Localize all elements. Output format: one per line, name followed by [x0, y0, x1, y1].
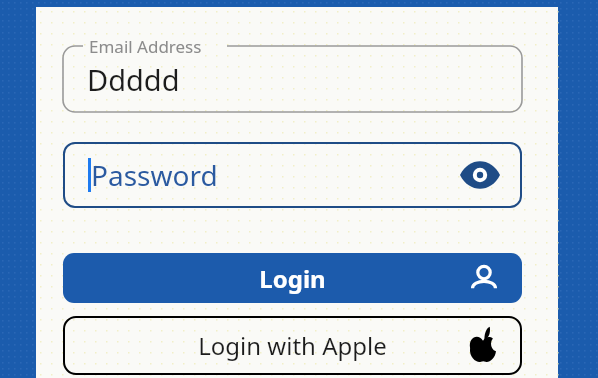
button[interactable]: Password: [63, 142, 522, 208]
staticText: Ddddd: [87, 60, 180, 99]
staticText: Email Address: [89, 35, 202, 58]
button[interactable]: Show password: [458, 153, 502, 197]
staticText: Login with Apple: [198, 329, 387, 362]
button[interactable]: Login: [63, 253, 522, 303]
button[interactable]: Ddddd: [63, 46, 522, 112]
staticText: Login: [259, 262, 326, 295]
staticText: Password: [91, 156, 218, 194]
button[interactable]: Login with Apple: [63, 316, 522, 375]
